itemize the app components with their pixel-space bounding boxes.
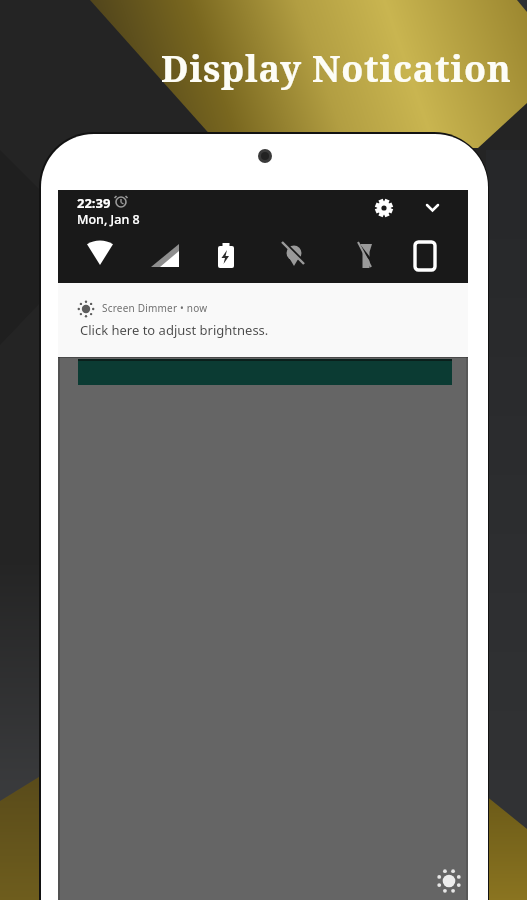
button[interactable] xyxy=(371,195,397,221)
button[interactable] xyxy=(78,359,452,385)
staticText: Screen Dimmer • now xyxy=(102,301,208,315)
staticText: Display Notication xyxy=(161,44,512,93)
staticText: Mon, Jan 8 xyxy=(77,211,140,228)
button[interactable] xyxy=(420,195,446,221)
staticText: Click here to adjust brightness. xyxy=(80,321,269,339)
staticText: 22:39 xyxy=(77,194,111,212)
button[interactable]: Screen Dimmer • now xyxy=(58,283,468,357)
